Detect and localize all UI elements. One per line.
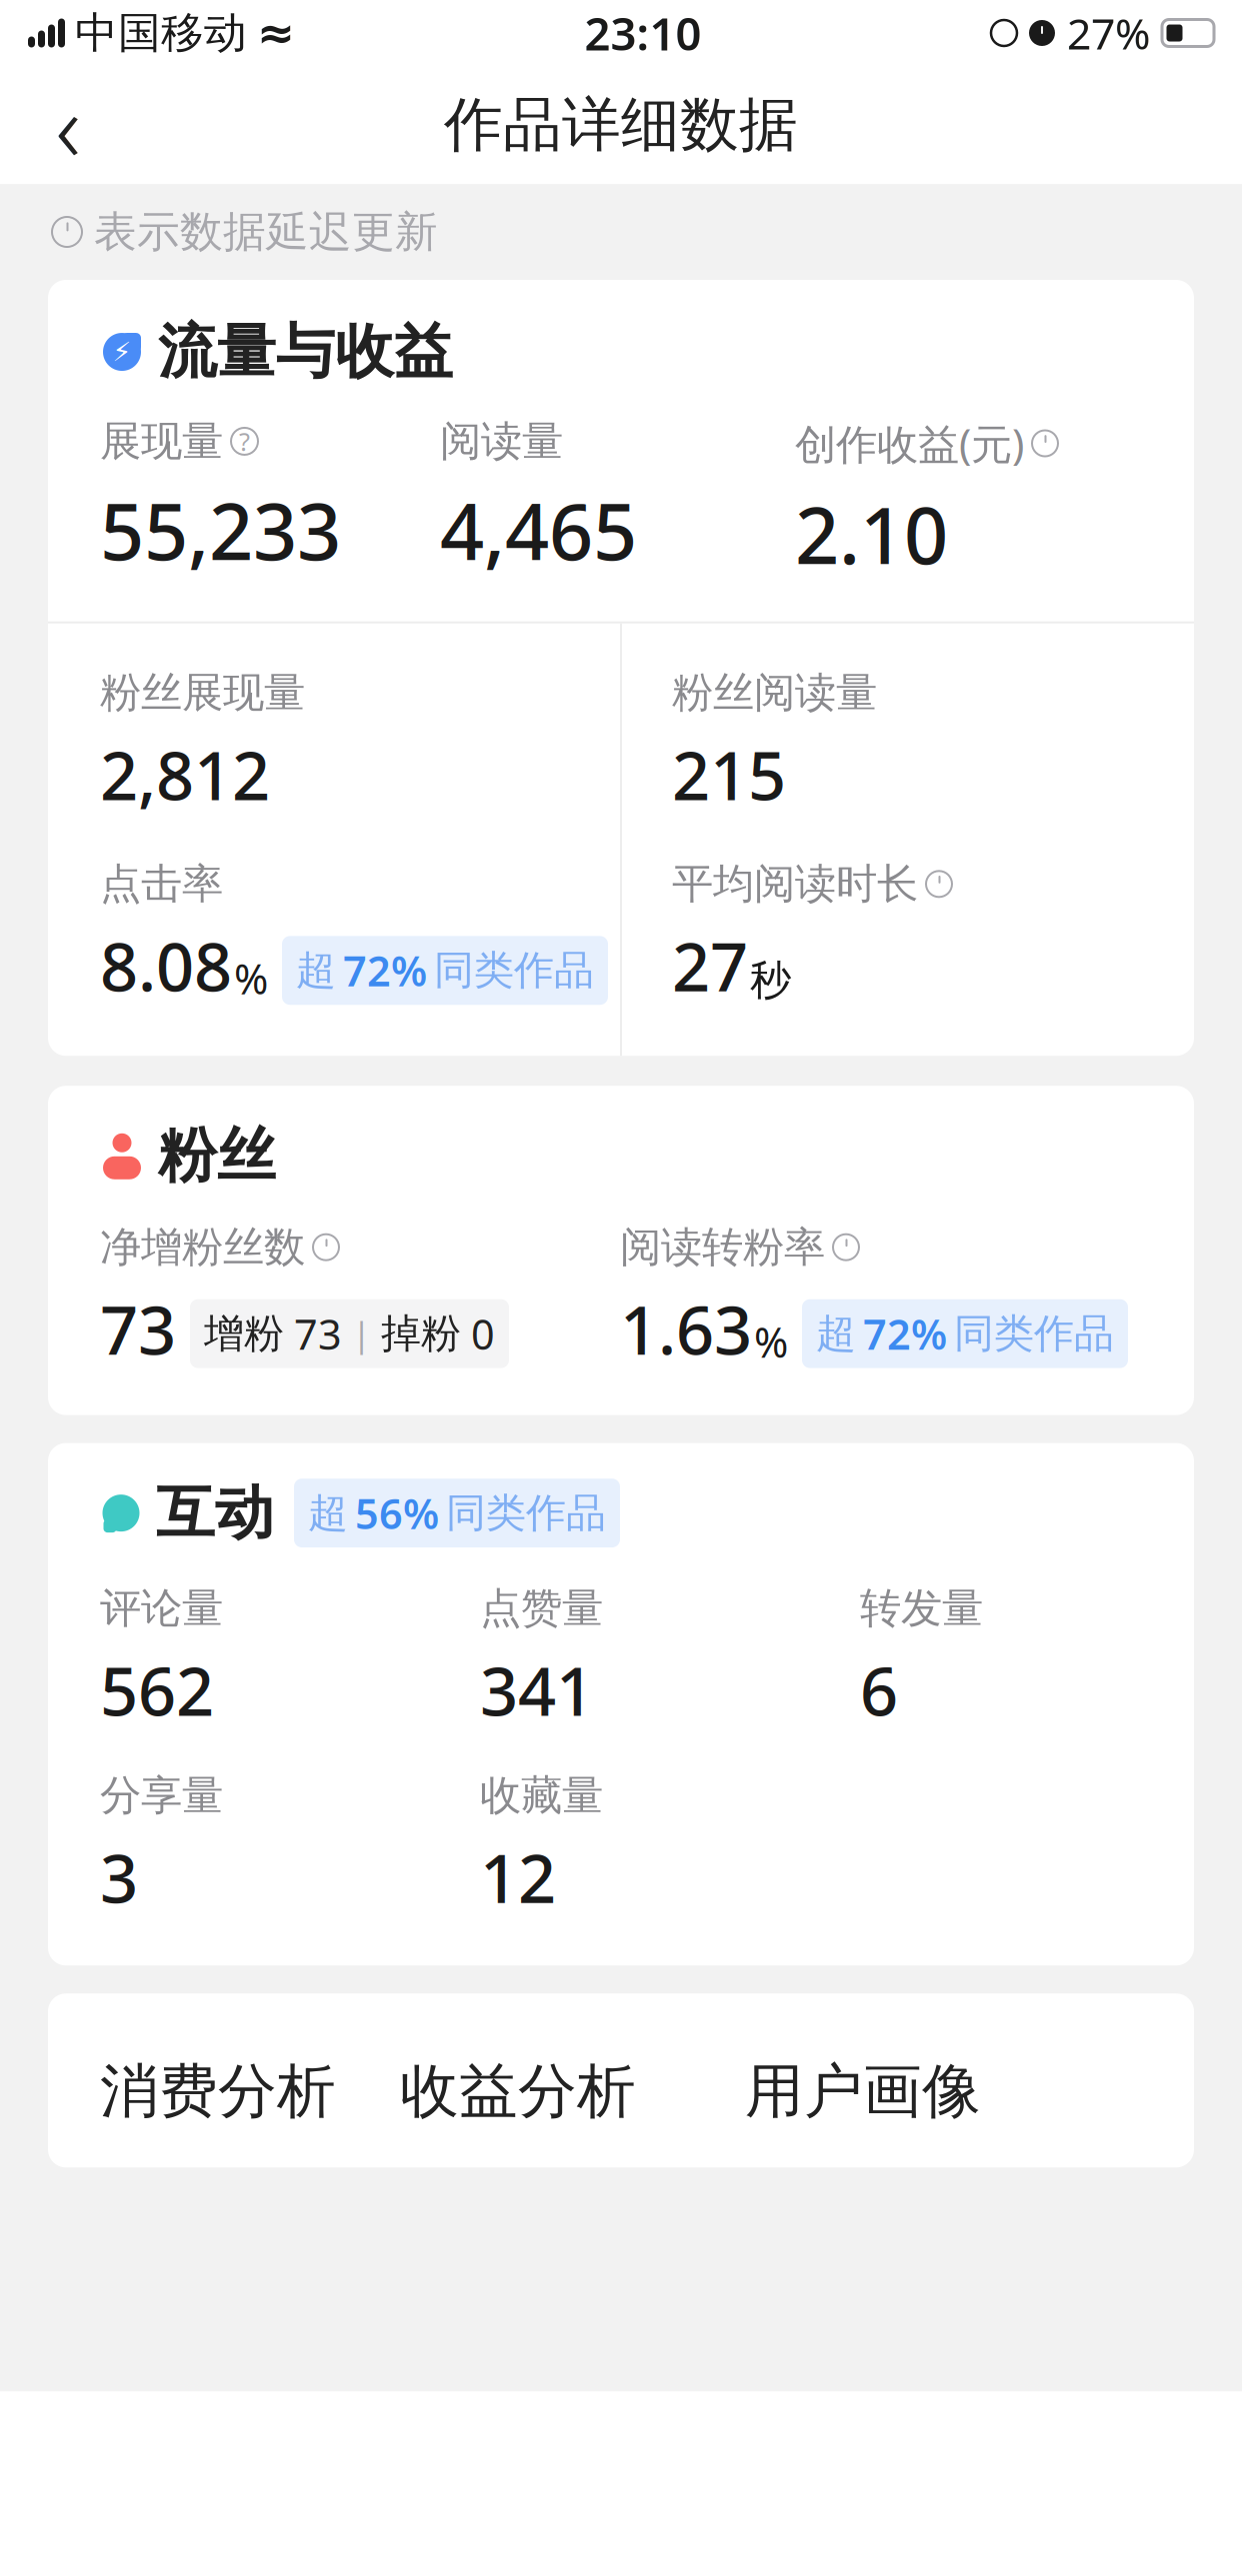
staticText: 阅读转粉率 (620, 1222, 825, 1273)
staticText: 341 (480, 1646, 594, 1734)
staticText: 表示数据延迟更新 (94, 206, 438, 258)
staticText: 粉丝展现量 (100, 667, 305, 718)
staticText: 12 (480, 1833, 556, 1921)
staticText: 4,465 (440, 479, 637, 581)
staticText: 1.63 (620, 1285, 752, 1373)
staticText: 215 (672, 730, 786, 819)
staticText: 展现量 (100, 416, 223, 467)
button[interactable]: 消费分析 (100, 2056, 400, 2128)
staticText: 562 (100, 1646, 214, 1734)
staticText: 0 (471, 1306, 495, 1361)
staticText: 72% (343, 943, 427, 998)
staticText: 73 (100, 1285, 176, 1373)
staticText: 72% (863, 1306, 947, 1361)
staticText: 平均阅读时长 (672, 859, 918, 909)
staticText: 消费分析 (100, 2056, 336, 2128)
staticText: 6 (860, 1646, 898, 1734)
staticText: 8.08 (100, 921, 232, 1010)
staticText: 创作收益(元) (795, 416, 1024, 471)
staticText: ≈ (257, 7, 295, 59)
staticText: 净增粉丝数 (100, 1222, 305, 1273)
staticText: 作品详细数据 (444, 89, 798, 161)
staticText: 同类作品 (446, 1489, 606, 1538)
staticText: 56% (355, 1486, 439, 1541)
staticText: 23:10 (584, 3, 701, 63)
staticText: 超 (308, 1489, 348, 1538)
staticText: ‹ (55, 61, 80, 189)
staticText: 55,233 (100, 479, 341, 581)
staticText: 收藏量 (480, 1770, 603, 1821)
button[interactable]: 收益分析 (400, 2056, 745, 2128)
button[interactable]: 返回 (22, 79, 114, 171)
staticText: 73 (294, 1306, 342, 1361)
staticText: 2.10 (795, 483, 948, 585)
staticText: % (754, 1314, 788, 1369)
staticText: 2,812 (100, 730, 270, 819)
staticText: ? (239, 424, 250, 458)
staticText: 增粉 (204, 1309, 284, 1358)
staticText: 流量与收益 (158, 316, 453, 388)
staticText: 同类作品 (954, 1309, 1114, 1358)
staticText: 粉丝 (158, 1120, 276, 1192)
staticText: % (234, 951, 268, 1006)
staticText: 互动 (156, 1477, 274, 1549)
staticText: 同类作品 (434, 946, 594, 995)
staticText: 转发量 (860, 1583, 983, 1634)
staticText: 掉粉 (381, 1309, 461, 1358)
staticText: 阅读量 (440, 416, 563, 467)
staticText: 用户画像 (745, 2056, 981, 2128)
staticText: 粉丝阅读量 (672, 667, 877, 718)
staticText: 3 (100, 1833, 138, 1921)
staticText: 超 (296, 946, 336, 995)
staticText: 分享量 (100, 1770, 223, 1821)
staticText: | (352, 1311, 371, 1357)
button[interactable]: 用户画像 (745, 2056, 981, 2128)
staticText: 评论量 (100, 1583, 223, 1634)
staticText: 收益分析 (400, 2056, 636, 2128)
staticText: 超 (816, 1309, 856, 1358)
staticText: 秒 (750, 955, 791, 1006)
staticText: 点击率 (100, 859, 223, 909)
staticText: 中国移动 (75, 7, 247, 59)
staticText: 27 (672, 921, 748, 1010)
staticText: ⚡︎ (112, 337, 131, 367)
staticText: 点赞量 (480, 1583, 603, 1634)
staticText: 27% (1067, 5, 1150, 61)
